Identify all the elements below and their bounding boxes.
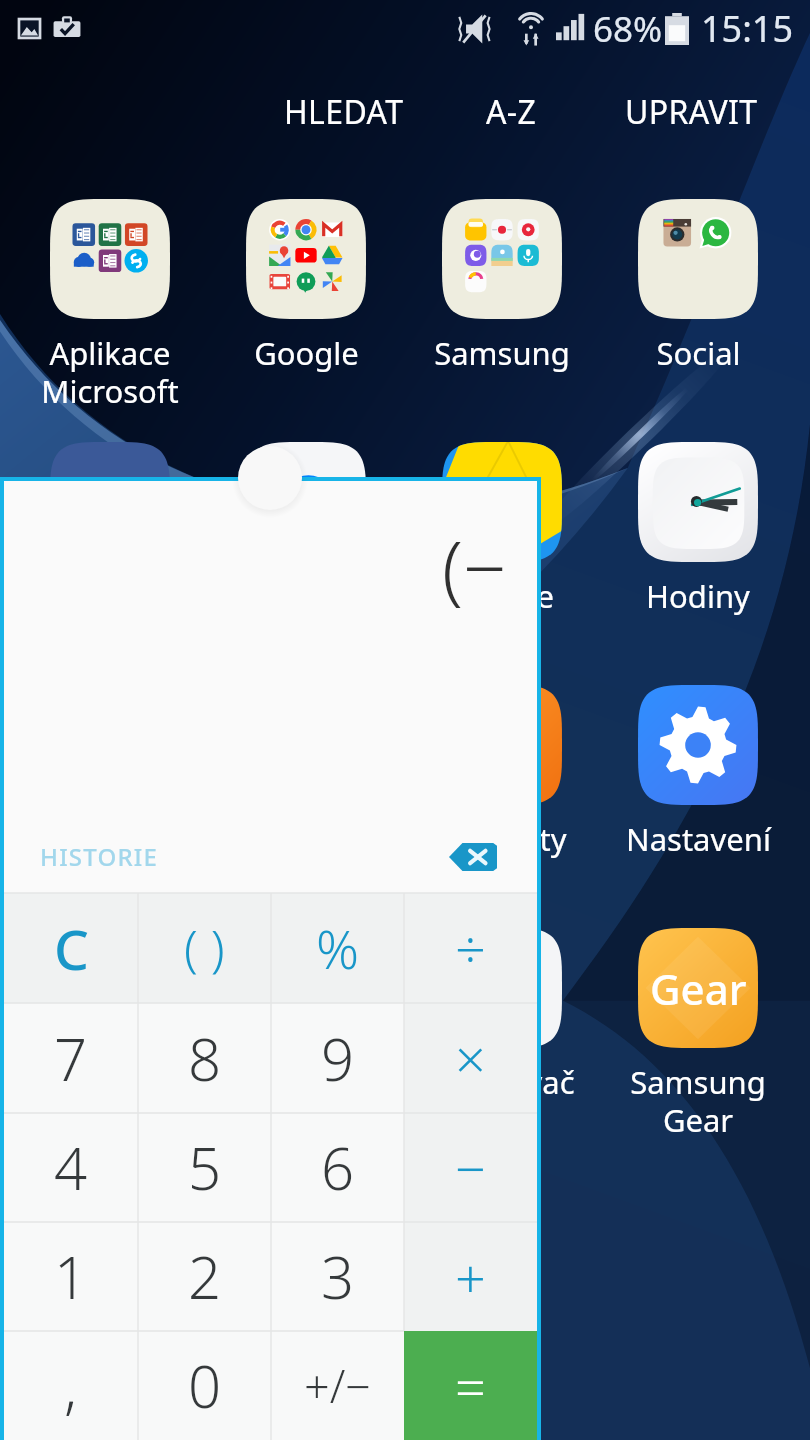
button[interactable]: C <box>4 893 138 1003</box>
button[interactable]: HISTORIE <box>4 831 175 882</box>
staticText: 68% <box>593 5 663 53</box>
button[interactable]: Hodiny <box>602 441 794 617</box>
button[interactable]: Move window <box>236 444 304 512</box>
button[interactable]: Galerie <box>406 441 598 617</box>
staticText: UPRAVIT <box>625 90 758 134</box>
button[interactable]: Social <box>602 198 794 374</box>
button[interactable]: Internet <box>210 927 402 1103</box>
staticText: (− <box>442 515 507 619</box>
staticText: Google <box>254 332 359 374</box>
button[interactable]: % <box>271 893 404 1003</box>
button[interactable]: , <box>4 1331 138 1440</box>
staticText: HISTORIE <box>40 840 159 873</box>
staticText: % <box>316 912 360 984</box>
staticText: Samsung <box>434 332 570 374</box>
button[interactable]: Gear <box>602 927 794 1141</box>
button[interactable]: Kontakty <box>406 684 598 860</box>
staticText: ÷ <box>455 911 486 985</box>
staticText: 7 <box>54 1019 88 1098</box>
button[interactable]: ÷ <box>404 893 537 1003</box>
staticText: +/− <box>304 1355 372 1416</box>
staticText: Internet <box>247 1061 366 1103</box>
staticText: 2 <box>188 1237 222 1316</box>
button[interactable]: × <box>404 1003 537 1113</box>
button[interactable]: A-Z <box>482 82 541 142</box>
button[interactable]: Přehrávač <box>406 927 598 1103</box>
button[interactable]: ( ) <box>138 893 271 1003</box>
button[interactable]: 5 <box>138 1113 271 1222</box>
staticText: Hodiny <box>646 575 750 617</box>
button[interactable]: Fotoaparát <box>14 927 206 1103</box>
staticText: Galerie <box>450 575 554 617</box>
button[interactable]: Backspace <box>449 843 497 871</box>
button[interactable]: Samsung <box>406 198 598 374</box>
button[interactable]: 6 <box>271 1113 404 1222</box>
staticText: Přehrávač <box>429 1061 575 1103</box>
button[interactable]: 7 <box>4 1003 138 1113</box>
staticText: 1 <box>54 1237 88 1316</box>
staticText: Nastavení <box>626 818 771 860</box>
staticText: A-Z <box>486 90 537 134</box>
button[interactable]: 2 <box>138 1222 271 1331</box>
staticText: × <box>455 1021 486 1095</box>
staticText: − <box>455 1131 486 1205</box>
staticText: Telefon <box>57 818 164 860</box>
staticText: 6 <box>321 1128 355 1207</box>
button[interactable]: 9 <box>271 1003 404 1113</box>
button[interactable]: 3 <box>271 1222 404 1331</box>
staticText: + <box>455 1240 486 1314</box>
button[interactable]: Aplikace Microsoft <box>14 198 206 412</box>
staticText: Gear <box>650 960 747 1017</box>
staticText: 4 <box>54 1128 88 1207</box>
staticText: 9 <box>321 1019 355 1098</box>
button[interactable]: 0 <box>138 1331 271 1440</box>
staticText: Samsung Gear <box>630 1061 766 1141</box>
button[interactable]: − <box>404 1113 537 1222</box>
staticText: Social <box>656 332 741 374</box>
button[interactable]: UPRAVIT <box>621 82 762 142</box>
button[interactable]: 4 <box>4 1113 138 1222</box>
button[interactable]: 1 <box>4 1222 138 1331</box>
button[interactable]: +/− <box>271 1331 404 1440</box>
staticText: Fotoaparát <box>30 1061 190 1103</box>
staticText: 8 <box>188 1019 222 1098</box>
staticText: HLEDAT <box>284 90 404 134</box>
staticText: Aplikace Microsoft <box>41 332 179 412</box>
staticText: 0 <box>188 1346 222 1425</box>
button[interactable]: Nastavení <box>602 684 794 860</box>
staticText: Kontakty <box>437 818 567 860</box>
button[interactable]: Google <box>210 198 402 374</box>
button[interactable]: 8 <box>138 1003 271 1113</box>
button[interactable]: = <box>404 1331 537 1440</box>
staticText: 3 <box>321 1237 355 1316</box>
staticText: ( ) <box>184 914 225 982</box>
button[interactable]: Messenger <box>210 441 402 617</box>
button[interactable]: HLEDAT <box>280 82 408 142</box>
button[interactable]: + <box>404 1222 537 1331</box>
staticText: 5 <box>188 1128 222 1207</box>
staticText: 15:15 <box>701 4 794 53</box>
staticText: , <box>64 1346 78 1425</box>
button[interactable]: Telefon <box>14 684 206 860</box>
button[interactable]: Facebook <box>14 441 206 617</box>
staticText: = <box>455 1349 486 1423</box>
staticText: C <box>54 911 89 986</box>
